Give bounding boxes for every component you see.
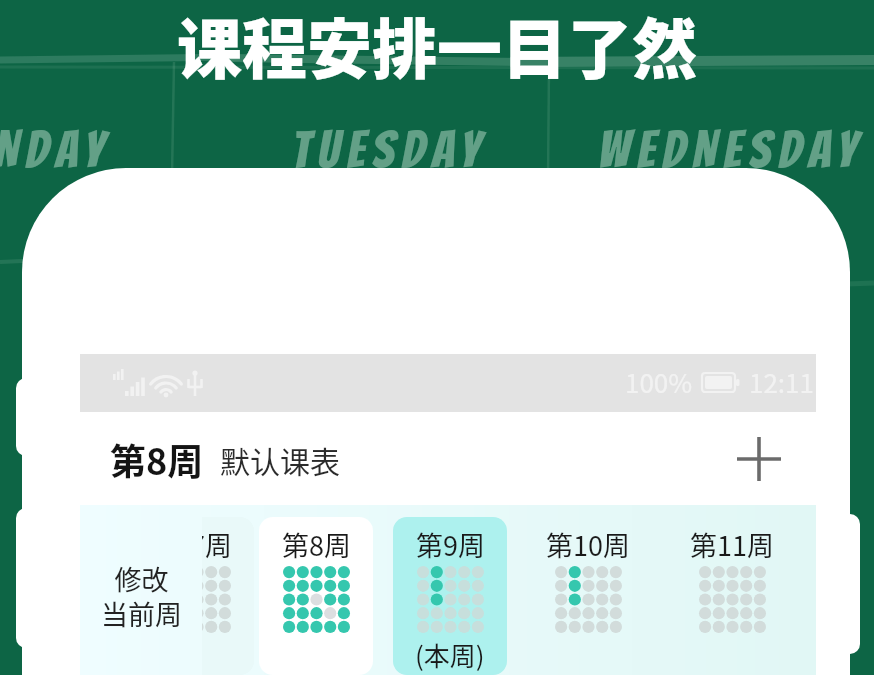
staticText: 默认课表 (220, 438, 340, 481)
button[interactable]: 第8周 (259, 517, 373, 675)
staticText: 修改 当前周 (101, 559, 182, 633)
staticText: 第9周 (416, 525, 485, 564)
button[interactable]: 第9周 (393, 517, 507, 675)
staticText: (本周) (415, 636, 485, 674)
button[interactable]: 第11周 (675, 517, 789, 675)
button[interactable]: 修改 当前周 (80, 505, 202, 675)
staticText: TUESDAY (291, 122, 487, 177)
staticText: 第10周 (546, 525, 630, 564)
staticText: WEDNESDAY (598, 122, 864, 177)
staticText: 第8周 (110, 433, 204, 485)
staticText: 100% (625, 363, 693, 401)
staticText: 第8周 (282, 525, 351, 564)
button[interactable]: Add schedule (719, 419, 799, 499)
button[interactable]: 第7周 (202, 517, 254, 675)
staticText: 第11周 (690, 525, 774, 564)
staticText: NDAY (0, 122, 111, 177)
staticText: 第7周 (202, 525, 232, 564)
staticText: 12:11 (749, 363, 814, 401)
staticText: 课程安排一目了然 (177, 0, 698, 92)
button[interactable]: 第10周 (531, 517, 645, 675)
